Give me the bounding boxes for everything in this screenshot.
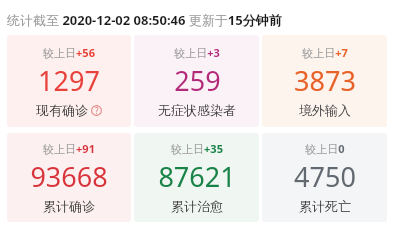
staticText: 累计死亡 — [299, 198, 351, 214]
staticText: 境外输入 — [299, 102, 351, 118]
staticText: 统计截至 2020-12-02 08:50:46 更新于15分钟前 — [7, 11, 282, 29]
button[interactable]: 较上日+91 — [7, 133, 131, 222]
button[interactable]: 较上日+56 — [7, 35, 131, 127]
button[interactable]: 较上日0 — [262, 133, 387, 222]
staticText: 现有确诊 — [36, 102, 88, 118]
staticText: 较上日0 — [305, 141, 345, 156]
button[interactable]: 较上日+3 — [134, 35, 259, 127]
button[interactable]: Help — [91, 105, 102, 116]
staticText: 累计治愈 — [171, 198, 223, 214]
staticText: 累计确诊 — [43, 198, 95, 214]
staticText: 较上日+35 — [171, 141, 223, 156]
button[interactable]: 较上日+7 — [262, 35, 387, 127]
staticText: 3873 — [294, 62, 356, 99]
staticText: 93668 — [30, 158, 108, 195]
staticText: 较上日+91 — [43, 141, 95, 156]
staticText: 较上日+7 — [302, 45, 348, 60]
staticText: ? — [95, 105, 99, 116]
staticText: 较上日+56 — [43, 45, 95, 60]
staticText: 无症状感染者 — [158, 102, 236, 118]
staticText: 87621 — [158, 158, 236, 195]
button[interactable]: 较上日+35 — [134, 133, 259, 222]
staticText: 4750 — [294, 158, 356, 195]
staticText: 1297 — [38, 62, 100, 99]
staticText: 259 — [174, 62, 221, 99]
staticText: 较上日+3 — [174, 45, 220, 60]
